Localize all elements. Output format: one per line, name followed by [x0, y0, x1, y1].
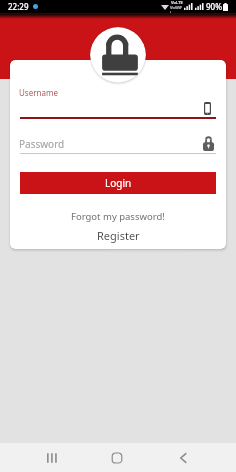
- staticText: VoLTE: [171, 0, 183, 5]
- button[interactable]: Use phone number: [200, 98, 218, 116]
- button[interactable]: Back: [176, 443, 190, 472]
- button[interactable]: Show password: [200, 133, 218, 151]
- staticText: 90%: [206, 1, 222, 12]
- button[interactable]: Recent apps: [41, 443, 62, 472]
- staticText: VoWiFi: [170, 5, 183, 13]
- button[interactable]: Login: [20, 172, 216, 194]
- button[interactable]: Register: [10, 226, 226, 244]
- staticText: Login: [105, 176, 132, 190]
- staticText: 22:29: [8, 1, 29, 12]
- button[interactable]: Forgot my password!: [10, 209, 226, 223]
- staticText: Password: [19, 137, 65, 151]
- button[interactable]: Home: [107, 443, 127, 472]
- staticText: Username: [19, 87, 58, 98]
- staticText: Register: [97, 228, 140, 243]
- staticText: Forgot my password!: [71, 210, 165, 223]
